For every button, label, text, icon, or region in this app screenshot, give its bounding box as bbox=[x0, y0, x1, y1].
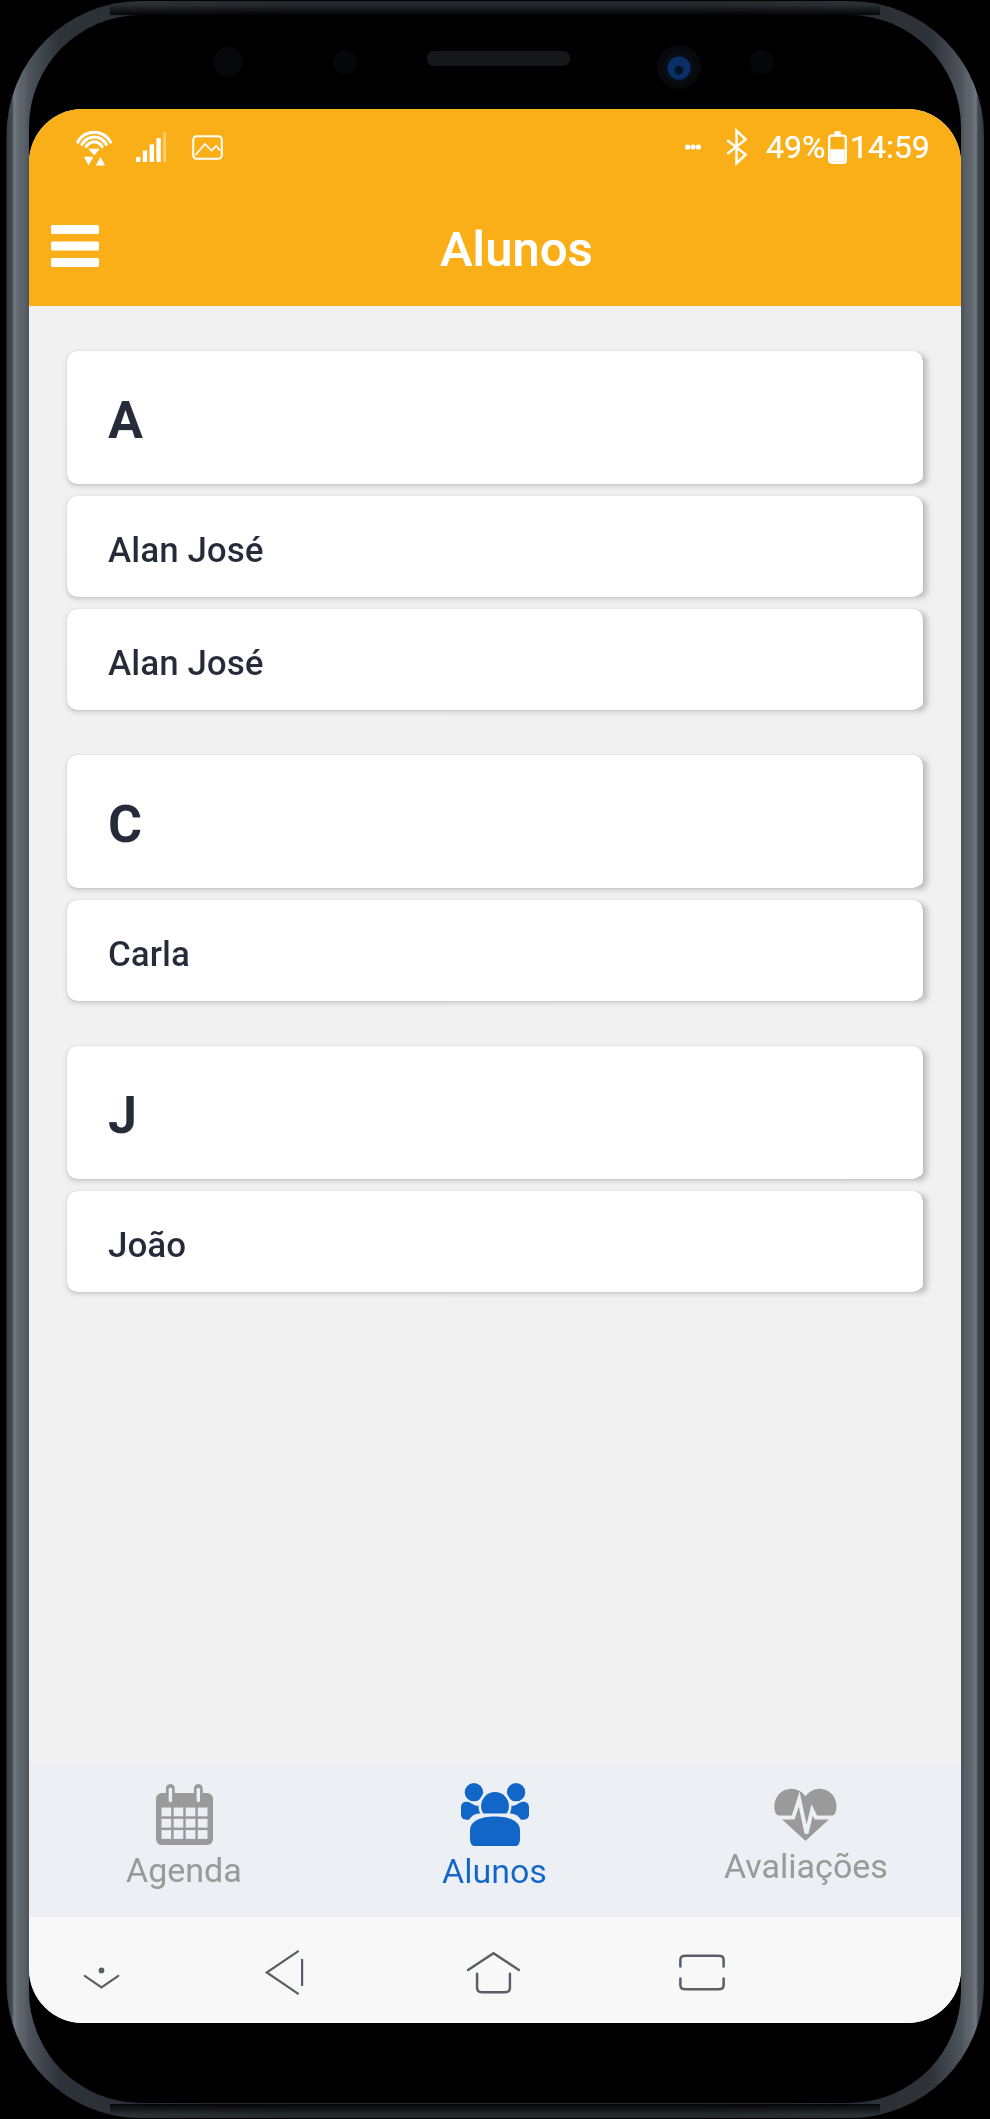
button[interactable]: J bbox=[67, 1046, 923, 1179]
staticText: João bbox=[108, 1225, 187, 1266]
staticText: Agenda bbox=[126, 1850, 242, 1890]
staticText: 14:59 bbox=[850, 128, 930, 166]
button[interactable]: Alan José bbox=[67, 609, 923, 710]
staticText: Alan José bbox=[108, 643, 264, 684]
button[interactable]: Carla bbox=[67, 900, 923, 1001]
button[interactable]: João bbox=[67, 1191, 923, 1292]
staticText: 49% bbox=[766, 128, 826, 166]
staticText: A bbox=[108, 390, 144, 451]
button[interactable]: Back bbox=[242, 1917, 328, 2023]
staticText: Carla bbox=[108, 934, 191, 975]
button[interactable]: A bbox=[67, 351, 923, 484]
staticText: J bbox=[108, 1085, 138, 1146]
button[interactable]: Alunos bbox=[339, 1764, 650, 1917]
button[interactable]: Menu bbox=[29, 190, 123, 302]
staticText: Avaliações bbox=[724, 1846, 888, 1886]
button[interactable]: C bbox=[67, 755, 923, 888]
button[interactable]: Home bbox=[450, 1917, 536, 2023]
staticText: C bbox=[108, 794, 143, 855]
staticText: Alan José bbox=[108, 530, 264, 571]
button[interactable]: Recent apps bbox=[659, 1917, 745, 2023]
button[interactable]: Avaliações bbox=[650, 1764, 961, 1917]
staticText: Alunos bbox=[440, 221, 593, 278]
button[interactable]: Alan José bbox=[67, 496, 923, 597]
staticText: Alunos bbox=[442, 1851, 547, 1891]
button[interactable]: Agenda bbox=[29, 1764, 339, 1917]
button[interactable]: Hide navigation bar bbox=[58, 1917, 144, 2023]
